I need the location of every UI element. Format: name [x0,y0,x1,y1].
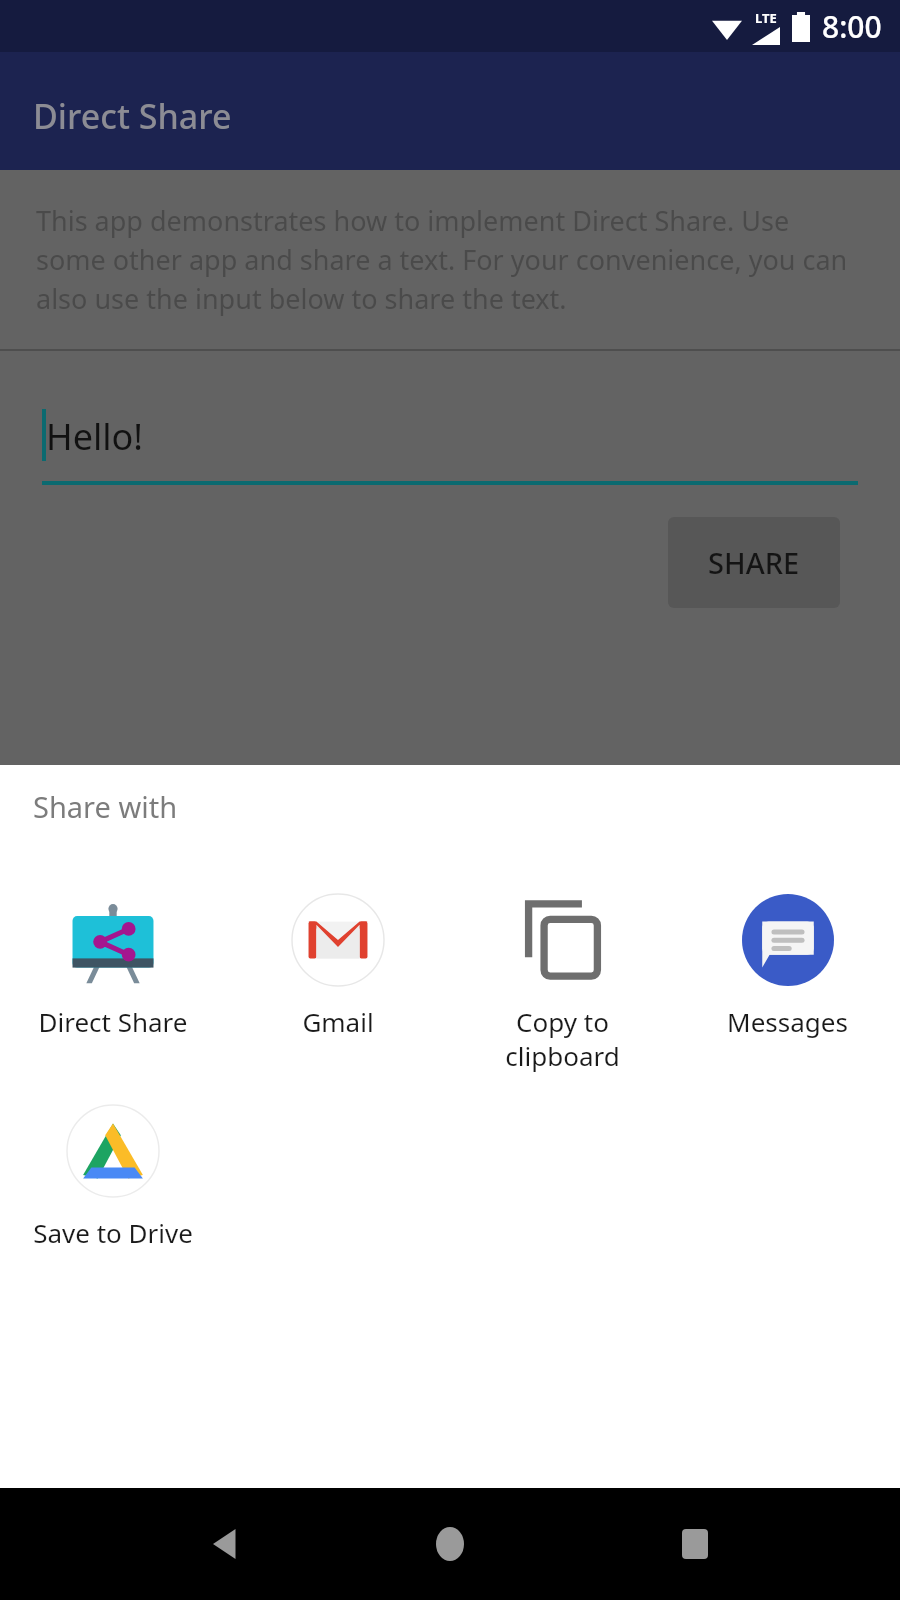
staticText: Hello! [46,412,144,461]
staticText: LTE [755,9,777,27]
button[interactable]: Back [210,1529,240,1559]
staticText: Direct Share [33,93,232,139]
staticText: Messages [727,1004,848,1039]
button[interactable]: Copy to clipboard [450,888,675,1077]
staticText: Share with [33,787,178,826]
staticText: Direct Share [38,1004,188,1039]
button[interactable]: Recents [682,1529,708,1559]
button[interactable]: Gmail [225,888,450,1043]
staticText: Gmail [302,1004,374,1039]
staticText: SHARE [708,543,800,582]
button[interactable]: Save to Drive [0,1099,225,1254]
staticText: Save to Drive [33,1215,193,1250]
button[interactable]: SHARE [668,517,840,608]
staticText: Copy to clipboard [505,1004,620,1073]
button[interactable]: Messages [675,888,900,1043]
staticText: This app demonstrates how to implement D… [36,202,864,317]
button[interactable]: Home [436,1527,464,1561]
button[interactable]: Direct Share [0,888,225,1043]
staticText: 8:00 [822,6,882,47]
